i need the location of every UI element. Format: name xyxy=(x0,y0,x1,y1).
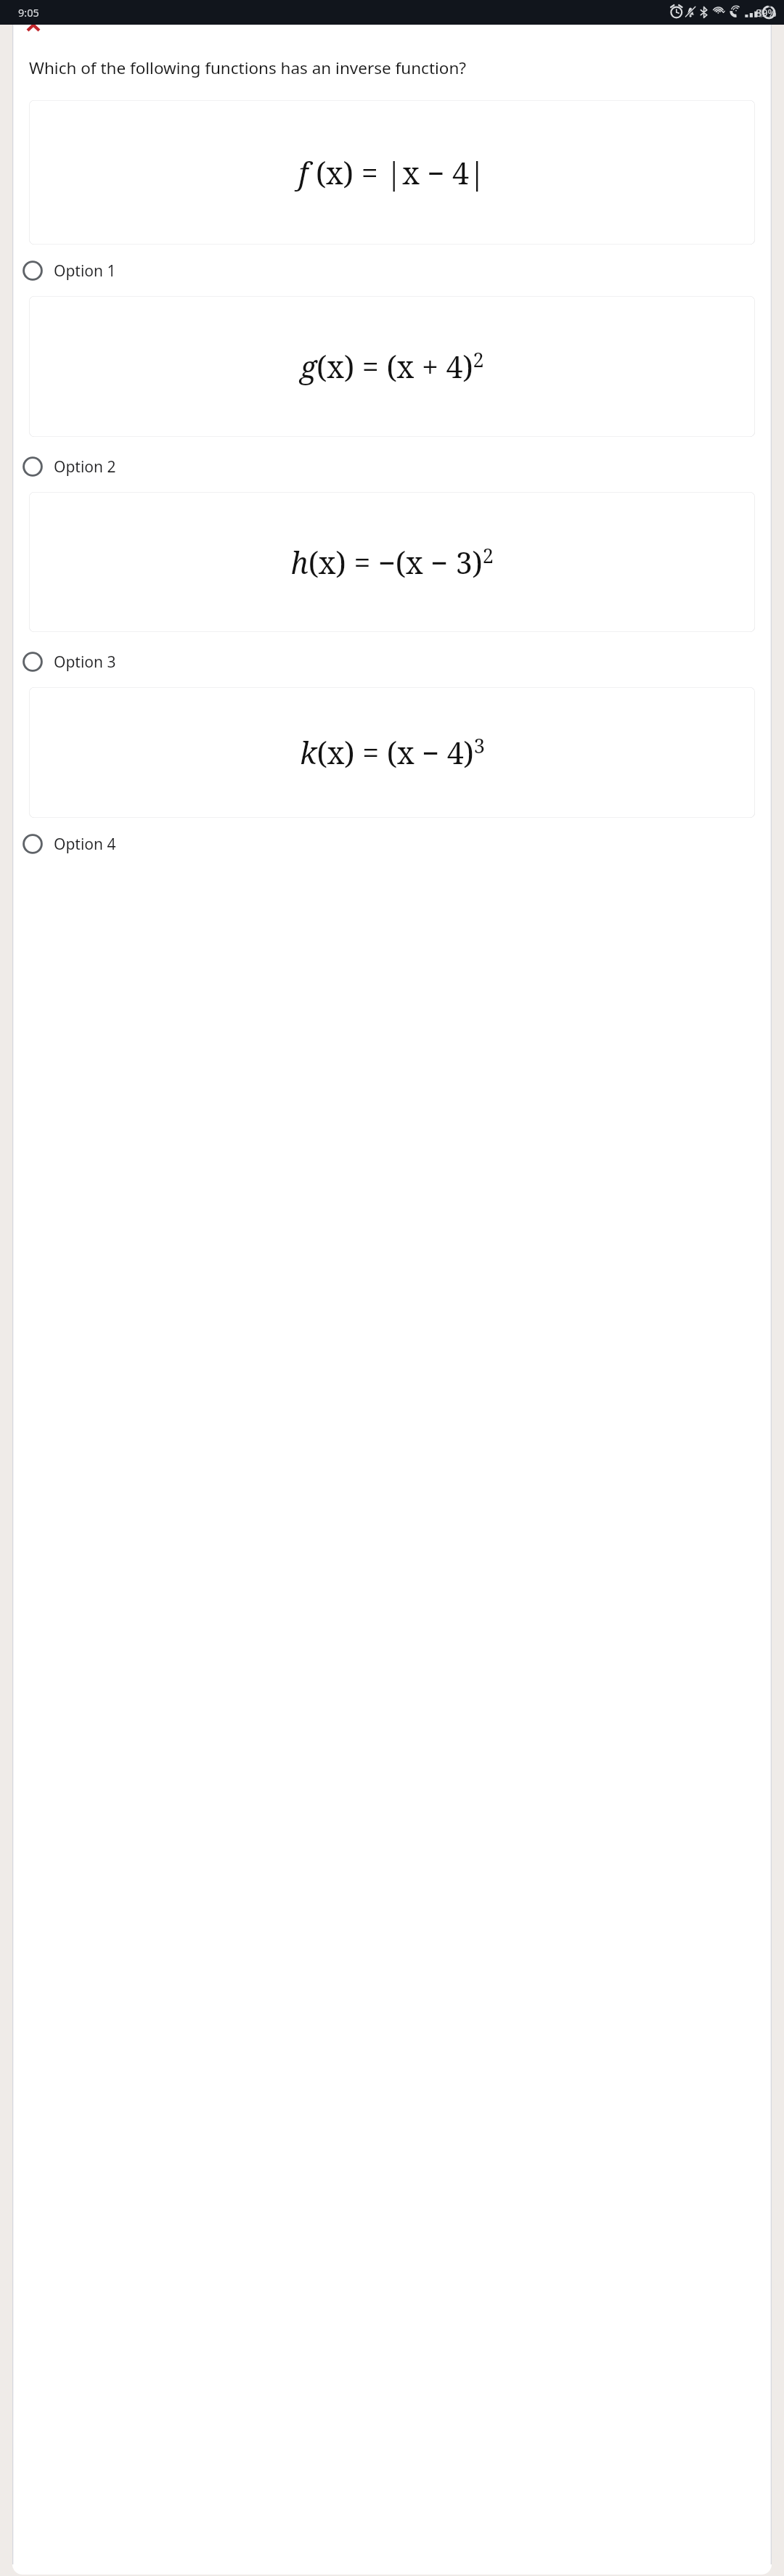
staticText: 89% xyxy=(756,5,777,20)
staticText: h(x) = −(x − 3)2 xyxy=(290,542,494,583)
staticText: Option 3 xyxy=(54,652,116,673)
button[interactable]: Option 2 xyxy=(12,446,772,487)
staticText: g(x) = (x + 4)2 xyxy=(300,346,484,387)
button[interactable]: Option 4 xyxy=(12,824,772,864)
staticText: k(x) = (x − 4)3 xyxy=(300,732,485,773)
button[interactable]: Option 1 xyxy=(12,250,772,291)
staticText: f (x) = |x − 4| xyxy=(298,152,486,193)
staticText: Which of the following functions has an … xyxy=(29,57,467,79)
staticText: Option 1 xyxy=(54,261,116,282)
staticText: 9:05 xyxy=(18,5,39,20)
button[interactable]: Option 3 xyxy=(12,641,772,682)
staticText: Option 2 xyxy=(54,456,116,477)
staticText: Option 4 xyxy=(54,834,116,855)
